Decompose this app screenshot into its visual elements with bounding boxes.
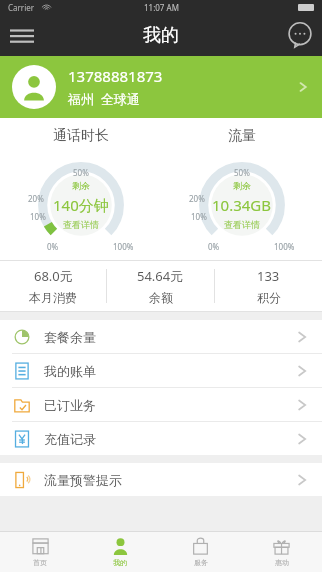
button[interactable]: 套餐余量 [0, 320, 322, 353]
staticText: 套餐余量 [44, 329, 294, 345]
button[interactable]: 50% [27, 151, 135, 259]
staticText: 10.34GB [212, 195, 272, 215]
staticText: 100% [113, 241, 134, 252]
staticText: Carrier [8, 2, 35, 13]
staticText: 查看详情 [224, 219, 260, 230]
button[interactable]: 流量预警提示 [0, 463, 322, 496]
staticText: 100% [274, 241, 295, 252]
staticText: 积分 [257, 290, 281, 305]
button[interactable]: 首页 [0, 532, 80, 572]
staticText: 我的 [113, 558, 127, 567]
staticText: 惠动 [275, 558, 289, 567]
staticText: 查看详情 [63, 219, 99, 230]
staticText: 0% [47, 241, 59, 252]
button[interactable]: Messages [278, 14, 322, 56]
staticText: 余额 [149, 290, 173, 305]
staticText: 133 [257, 267, 280, 285]
staticText: 福州 全球通 [68, 90, 140, 108]
button[interactable]: 惠动 [241, 532, 322, 572]
button[interactable]: 服务 [160, 532, 241, 572]
staticText: 10% [30, 211, 46, 222]
staticText: 0% [208, 241, 220, 252]
staticText: 10% [191, 211, 207, 222]
button[interactable]: 我的账单 [0, 354, 322, 387]
staticText: 54.64元 [137, 267, 184, 285]
staticText: 50% [234, 167, 250, 178]
staticText: 通话时长 [53, 127, 109, 145]
button[interactable]: 充值记录 [0, 422, 322, 455]
staticText: 服务 [194, 558, 208, 567]
button[interactable]: 68.0元 [0, 261, 106, 311]
staticText: 我的 [143, 24, 179, 47]
staticText: 20% [189, 193, 205, 204]
button[interactable]: 我的 [80, 532, 160, 572]
staticText: 140分钟 [53, 195, 109, 215]
staticText: 我的账单 [44, 363, 294, 379]
staticText: 流量 [228, 127, 256, 145]
button[interactable]: 50% [188, 151, 296, 259]
staticText: 剩余 [233, 180, 251, 191]
button[interactable]: 133 [215, 261, 322, 311]
staticText: 68.0元 [34, 267, 73, 285]
staticText: 本月消费 [29, 290, 77, 305]
button[interactable]: 已订业务 [0, 388, 322, 421]
button[interactable]: 13788881873 [0, 56, 322, 118]
staticText: 流量预警提示 [44, 472, 294, 488]
staticText: 20% [28, 193, 44, 204]
button[interactable]: Menu [0, 14, 44, 56]
staticText: 充值记录 [44, 431, 294, 447]
button[interactable]: 54.64元 [107, 261, 214, 311]
staticText: 11:07 AM [144, 2, 179, 13]
staticText: 50% [73, 167, 89, 178]
staticText: 已订业务 [44, 397, 294, 413]
staticText: 13788881873 [68, 66, 163, 86]
staticText: 首页 [33, 558, 47, 567]
staticText: 剩余 [72, 180, 90, 191]
